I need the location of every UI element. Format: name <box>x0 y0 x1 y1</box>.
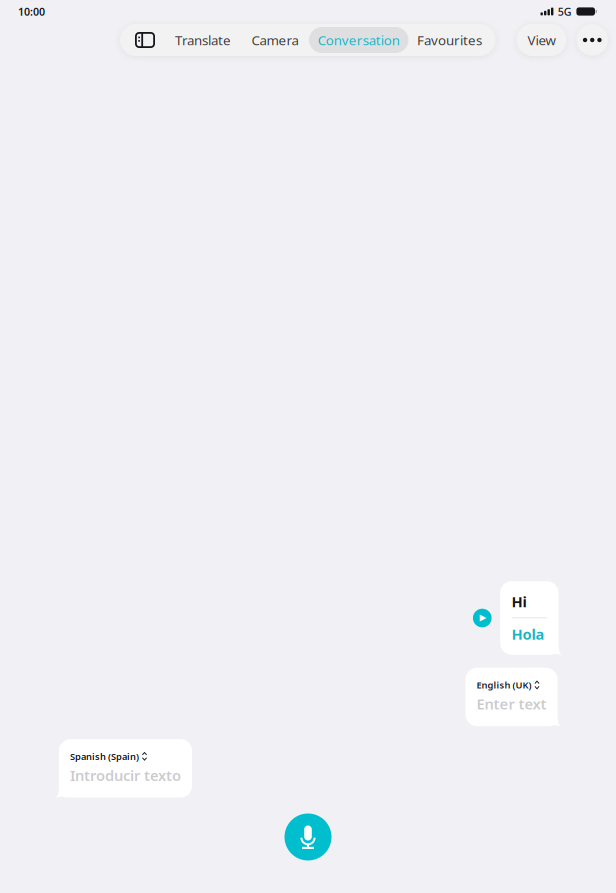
staticText: Enter text <box>476 694 546 714</box>
staticText: Camera <box>251 31 298 49</box>
button[interactable]: Favourites <box>408 27 490 53</box>
staticText: Spanish (Spain) <box>70 750 139 762</box>
staticText: 10:00 <box>18 4 45 19</box>
staticText: Introducir texto <box>70 765 181 785</box>
button[interactable]: Show sidebar <box>125 24 165 56</box>
button[interactable]: More options <box>576 24 608 56</box>
staticText: Conversation <box>318 31 400 49</box>
staticText: 5G <box>558 4 572 19</box>
staticText: View <box>527 31 555 49</box>
staticText: Favourites <box>417 31 482 49</box>
button[interactable]: Camera <box>241 27 309 53</box>
button[interactable]: Conversation <box>309 27 408 53</box>
button[interactable]: Play translation <box>473 609 492 627</box>
button[interactable]: Spanish (Spain) <box>70 750 147 762</box>
staticText: Hola <box>512 624 545 644</box>
staticText: English (UK) <box>476 679 531 691</box>
button[interactable]: Translate <box>165 27 241 53</box>
staticText: Translate <box>175 31 231 49</box>
button[interactable]: Start listening <box>284 813 331 860</box>
button[interactable]: View <box>516 24 566 56</box>
button[interactable]: English (UK) <box>476 679 539 691</box>
staticText: Hi <box>512 592 527 611</box>
